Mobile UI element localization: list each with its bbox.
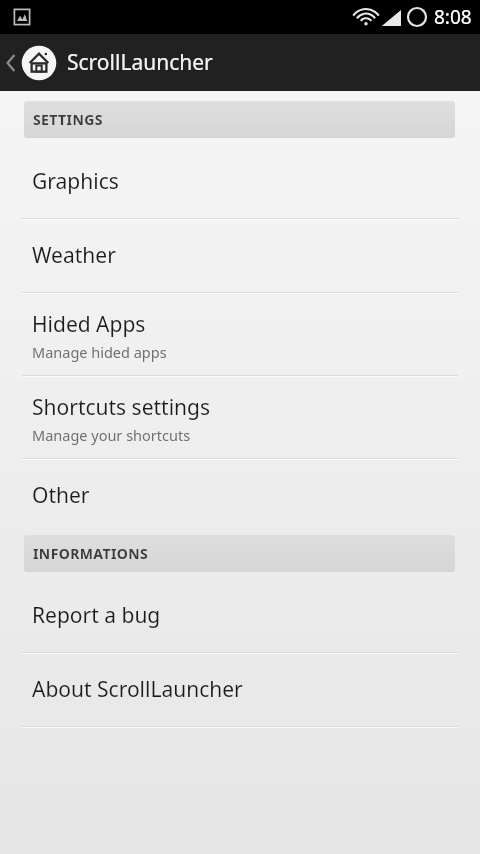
button[interactable]: Weather bbox=[0, 220, 480, 292]
button[interactable]: Graphics bbox=[0, 146, 480, 218]
staticText: Graphics bbox=[32, 167, 119, 196]
staticText: ScrollLauncher bbox=[67, 48, 213, 77]
button[interactable]: Shortcuts settings bbox=[0, 377, 480, 458]
staticText: 8:08 bbox=[434, 4, 472, 30]
staticText: Shortcuts settings bbox=[32, 393, 211, 422]
staticText: About ScrollLauncher bbox=[32, 675, 243, 704]
staticText: Hided Apps bbox=[32, 310, 146, 339]
staticText: Weather bbox=[32, 241, 116, 270]
button[interactable]: Report a bug bbox=[0, 580, 480, 652]
staticText: Report a bug bbox=[32, 601, 161, 630]
staticText: Other bbox=[32, 481, 90, 510]
button[interactable]: Navigate up, home bbox=[0, 34, 480, 91]
staticText: INFORMATIONS bbox=[33, 544, 149, 563]
button[interactable]: About ScrollLauncher bbox=[0, 654, 480, 726]
staticText: Manage your shortcuts bbox=[32, 425, 191, 445]
staticText: SETTINGS bbox=[33, 110, 103, 129]
staticText: Manage hided apps bbox=[32, 342, 167, 362]
button[interactable]: Hided Apps bbox=[0, 294, 480, 375]
button[interactable]: Other bbox=[0, 460, 480, 532]
